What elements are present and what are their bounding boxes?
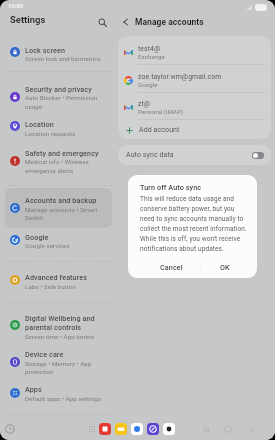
button[interactable]: [5, 265, 112, 297]
staticText: Device care: [25, 350, 115, 358]
staticText: Accounts and backup: [25, 196, 115, 204]
button[interactable]: zt@: [118, 95, 271, 119]
staticText: protection: [25, 368, 115, 375]
staticText: emergency alerts: [25, 167, 115, 174]
staticText: zoe.taylor.wm@gmail.com: [138, 73, 222, 81]
staticText: Google: [25, 233, 115, 241]
staticText: Advanced features: [25, 273, 115, 281]
staticText: Exchange: [138, 53, 165, 60]
staticText: Digital Wellbeing and parental controls: [25, 314, 115, 332]
button[interactable]: [5, 377, 112, 409]
button[interactable]: Home: [222, 423, 234, 435]
button[interactable]: Search: [94, 14, 110, 30]
staticText: This will reduce data usage and conserve…: [140, 195, 247, 253]
staticText: Medical info • Wireless: [25, 158, 115, 165]
staticText: Cancel: [160, 263, 183, 271]
staticText: Add account: [139, 126, 180, 134]
staticText: Auto sync data: [126, 151, 174, 159]
button[interactable]: [5, 342, 112, 382]
staticText: Screen lock and biometrics: [25, 55, 115, 62]
staticText: zt@: [138, 100, 151, 108]
staticText: Google: [138, 81, 158, 88]
button[interactable]: [5, 141, 112, 181]
staticText: Default apps • App settings: [25, 395, 115, 402]
button[interactable]: Recents: [200, 423, 212, 435]
staticText: Location: [25, 120, 115, 128]
button[interactable]: App: [115, 423, 127, 435]
button[interactable]: zoe.taylor.wm@gmail.com: [118, 68, 271, 92]
button[interactable]: [5, 38, 112, 70]
button[interactable]: test4@: [118, 40, 271, 64]
staticText: Lock screen: [25, 46, 115, 54]
staticText: Storage • Memory • App: [25, 360, 115, 367]
staticText: OK: [220, 263, 230, 271]
staticText: Turn off Auto sync: [140, 183, 202, 191]
staticText: usage: [25, 103, 115, 110]
button[interactable]: App: [99, 423, 111, 435]
button[interactable]: Auto sync data: [118, 145, 271, 165]
button[interactable]: App: [163, 423, 175, 435]
button[interactable]: Cancel: [150, 260, 192, 274]
button[interactable]: [5, 188, 112, 228]
button[interactable]: [5, 112, 112, 144]
button[interactable]: [5, 225, 112, 257]
staticText: Security and privacy: [25, 85, 115, 93]
button[interactable]: Back: [122, 14, 204, 30]
staticText: Settings: [10, 14, 46, 25]
button[interactable]: OK: [208, 260, 241, 274]
staticText: Safety and emergency: [25, 149, 115, 157]
button[interactable]: Back: [245, 423, 257, 435]
staticText: Manage accounts • Smart: [25, 206, 115, 213]
staticText: Manage accounts: [135, 17, 204, 27]
button[interactable]: App: [147, 423, 159, 435]
staticText: Apps: [25, 385, 115, 393]
staticText: Screen time • App timers: [25, 333, 115, 340]
staticText: Auto Blocker • Permission: [25, 94, 115, 101]
staticText: Labs • Side button: [25, 283, 115, 290]
staticText: Location requests: [25, 130, 115, 137]
staticText: test4@: [138, 45, 161, 53]
staticText: 10:00: [8, 3, 24, 10]
staticText: Personal (IMAP): [138, 108, 184, 115]
button[interactable]: App: [131, 423, 143, 435]
button[interactable]: Add account: [118, 120, 271, 140]
button[interactable]: [5, 306, 112, 347]
staticText: Switch: [25, 214, 115, 221]
staticText: Google services: [25, 242, 115, 249]
button[interactable]: [5, 77, 112, 117]
button[interactable]: Clock: [5, 424, 15, 434]
